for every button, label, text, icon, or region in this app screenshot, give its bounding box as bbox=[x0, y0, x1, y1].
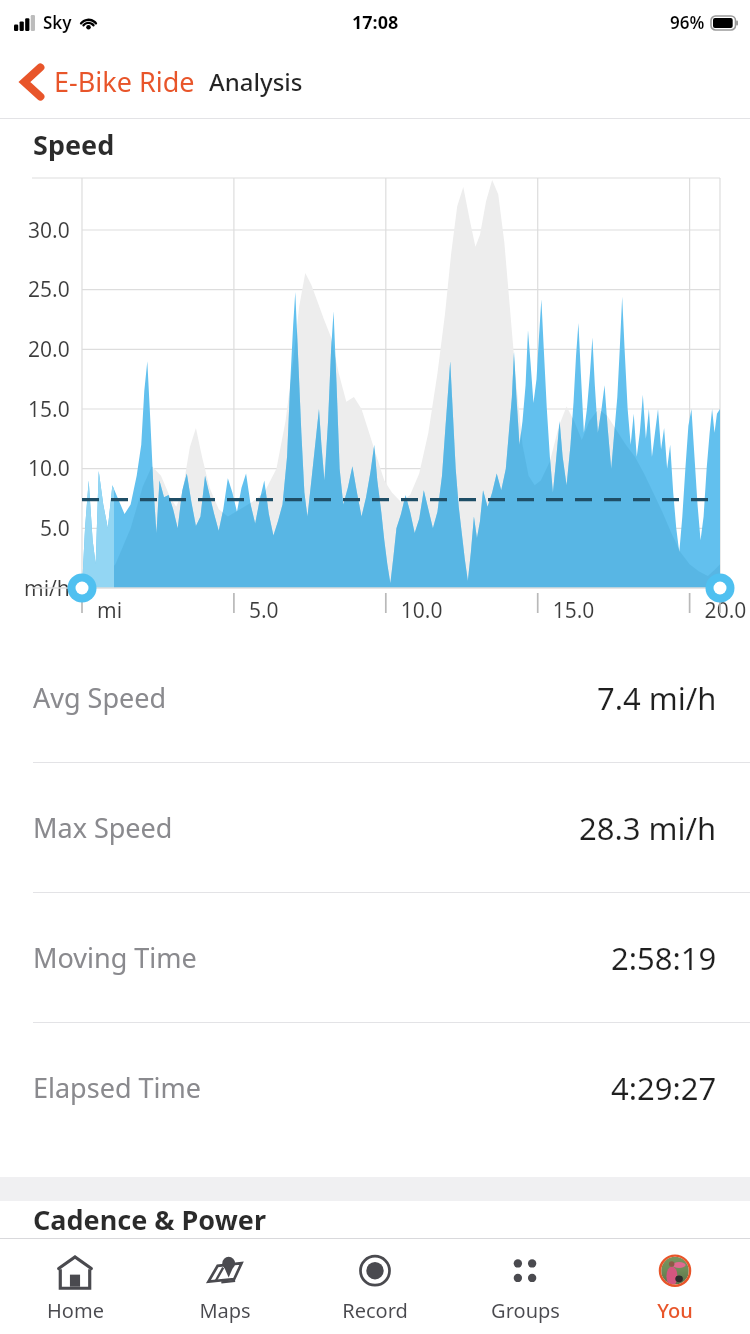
button[interactable]: Maps bbox=[150, 1239, 300, 1334]
staticText: 28.3 mi/h bbox=[579, 807, 717, 849]
staticText: 7.4 mi/h bbox=[597, 677, 717, 719]
staticText: Analysis bbox=[209, 65, 303, 98]
staticText: Record bbox=[342, 1297, 408, 1324]
staticText: You bbox=[657, 1297, 693, 1324]
button[interactable]: Elapsed Time bbox=[0, 1023, 750, 1152]
staticText: 17:08 bbox=[352, 10, 399, 35]
staticText: Elapsed Time bbox=[33, 1069, 201, 1106]
button[interactable]: Max Speed bbox=[0, 763, 750, 892]
staticText: E-Bike Ride bbox=[54, 63, 195, 100]
staticText: Groups bbox=[491, 1297, 560, 1324]
button[interactable]: Record bbox=[300, 1239, 450, 1334]
button[interactable]: You bbox=[600, 1239, 750, 1334]
staticText: 96% bbox=[670, 11, 705, 34]
staticText: Speed bbox=[33, 126, 115, 163]
staticText: Maps bbox=[199, 1297, 251, 1324]
staticText: Avg Speed bbox=[33, 679, 167, 716]
staticText: 4:29:27 bbox=[611, 1067, 717, 1109]
button[interactable]: Avg Speed bbox=[0, 633, 750, 762]
staticText: Moving Time bbox=[33, 939, 197, 976]
staticText: Cadence & Power bbox=[33, 1201, 266, 1238]
button[interactable]: Groups bbox=[450, 1239, 600, 1334]
staticText: Home bbox=[47, 1297, 104, 1324]
staticText: Max Speed bbox=[33, 809, 173, 846]
button[interactable]: Back to E-Bike Ride bbox=[0, 57, 203, 106]
staticText: 2:58:19 bbox=[611, 937, 717, 979]
button[interactable]: Moving Time bbox=[0, 893, 750, 1022]
button[interactable]: Home bbox=[0, 1239, 150, 1334]
staticText: Sky bbox=[43, 11, 72, 34]
